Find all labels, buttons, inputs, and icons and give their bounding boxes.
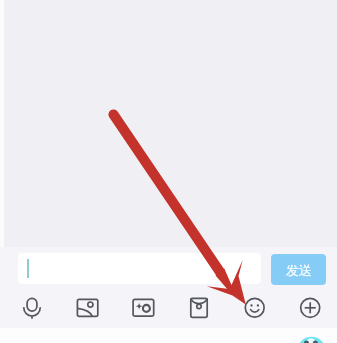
staticText: 发送 [286, 262, 312, 278]
button[interactable]: More [293, 291, 327, 325]
button[interactable]: Sticker [126, 291, 160, 325]
button[interactable]: Voice message [15, 291, 49, 325]
button[interactable]: Red packet [182, 291, 216, 325]
button[interactable] [18, 253, 261, 284]
button[interactable]: 发送 [271, 254, 326, 285]
button[interactable]: Emoji [238, 291, 272, 325]
button[interactable]: Photo [71, 291, 105, 325]
